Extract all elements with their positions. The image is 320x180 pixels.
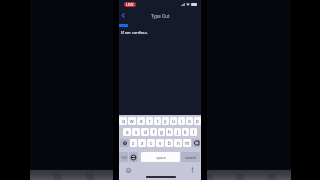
staticText: LIVE <box>126 2 134 7</box>
button[interactable]: Back <box>120 12 127 19</box>
staticText: d <box>144 129 147 135</box>
staticText: v <box>159 140 162 146</box>
staticText: t <box>157 118 159 124</box>
staticText: u <box>172 118 175 124</box>
button[interactable]: o <box>186 117 193 125</box>
button[interactable]: Shift <box>120 139 129 147</box>
button[interactable]: i <box>178 117 185 125</box>
button[interactable]: space <box>141 152 180 162</box>
staticText: b <box>168 140 171 146</box>
button[interactable]: l <box>190 128 197 136</box>
button[interactable]: Backspace <box>192 139 200 147</box>
staticText: h <box>168 129 171 135</box>
button[interactable]: m <box>183 139 191 147</box>
staticText: r <box>149 118 151 124</box>
staticText: c <box>150 140 153 146</box>
button[interactable]: a <box>123 128 131 136</box>
staticText: s <box>135 129 138 135</box>
button[interactable]: f <box>150 128 157 136</box>
button[interactable]: n <box>174 139 182 147</box>
staticText: search <box>185 155 197 160</box>
button[interactable]: b <box>165 139 173 147</box>
button[interactable]: Switch keyboard <box>129 152 138 162</box>
button[interactable]: d <box>141 128 149 136</box>
staticText: i <box>181 118 183 124</box>
button[interactable]: search <box>181 152 200 162</box>
button[interactable]: 123 <box>119 152 128 162</box>
staticText: space <box>156 155 166 160</box>
button[interactable]: y <box>162 117 169 125</box>
button[interactable]: u <box>170 117 177 125</box>
staticText: 123 <box>121 155 127 160</box>
button[interactable]: s <box>132 128 140 136</box>
button[interactable]: Emoji <box>126 168 131 173</box>
button[interactable]: e <box>137 117 145 125</box>
staticText: n <box>177 140 180 146</box>
staticText: a <box>126 129 129 135</box>
button[interactable]: q <box>119 117 127 125</box>
staticText: g <box>160 129 163 135</box>
button[interactable]: k <box>182 128 189 136</box>
staticText: f <box>153 129 155 135</box>
staticText: y <box>164 118 167 124</box>
staticText: j <box>177 129 179 135</box>
staticText: w <box>130 118 134 124</box>
staticText: q <box>122 118 125 124</box>
staticText: Type Out <box>151 13 170 19</box>
button[interactable]: j <box>174 128 181 136</box>
staticText: k <box>184 129 187 135</box>
button[interactable]: g <box>158 128 165 136</box>
button[interactable]: h <box>166 128 173 136</box>
staticText: z <box>132 140 135 146</box>
button[interactable]: p <box>194 117 201 125</box>
staticText: e <box>140 118 143 124</box>
button[interactable]: x <box>138 139 146 147</box>
staticText: m <box>185 140 190 146</box>
staticText: p <box>196 118 199 124</box>
button[interactable]: Dictation <box>191 167 194 173</box>
button[interactable]: z <box>130 139 137 147</box>
staticText: l <box>193 129 195 135</box>
staticText: If we confess. <box>121 30 148 36</box>
button[interactable]: c <box>147 139 155 147</box>
button[interactable]: r <box>146 117 153 125</box>
staticText: x <box>141 140 144 146</box>
staticText: o <box>188 118 191 124</box>
button[interactable]: v <box>156 139 164 147</box>
button[interactable]: w <box>128 117 136 125</box>
button[interactable]: t <box>154 117 161 125</box>
